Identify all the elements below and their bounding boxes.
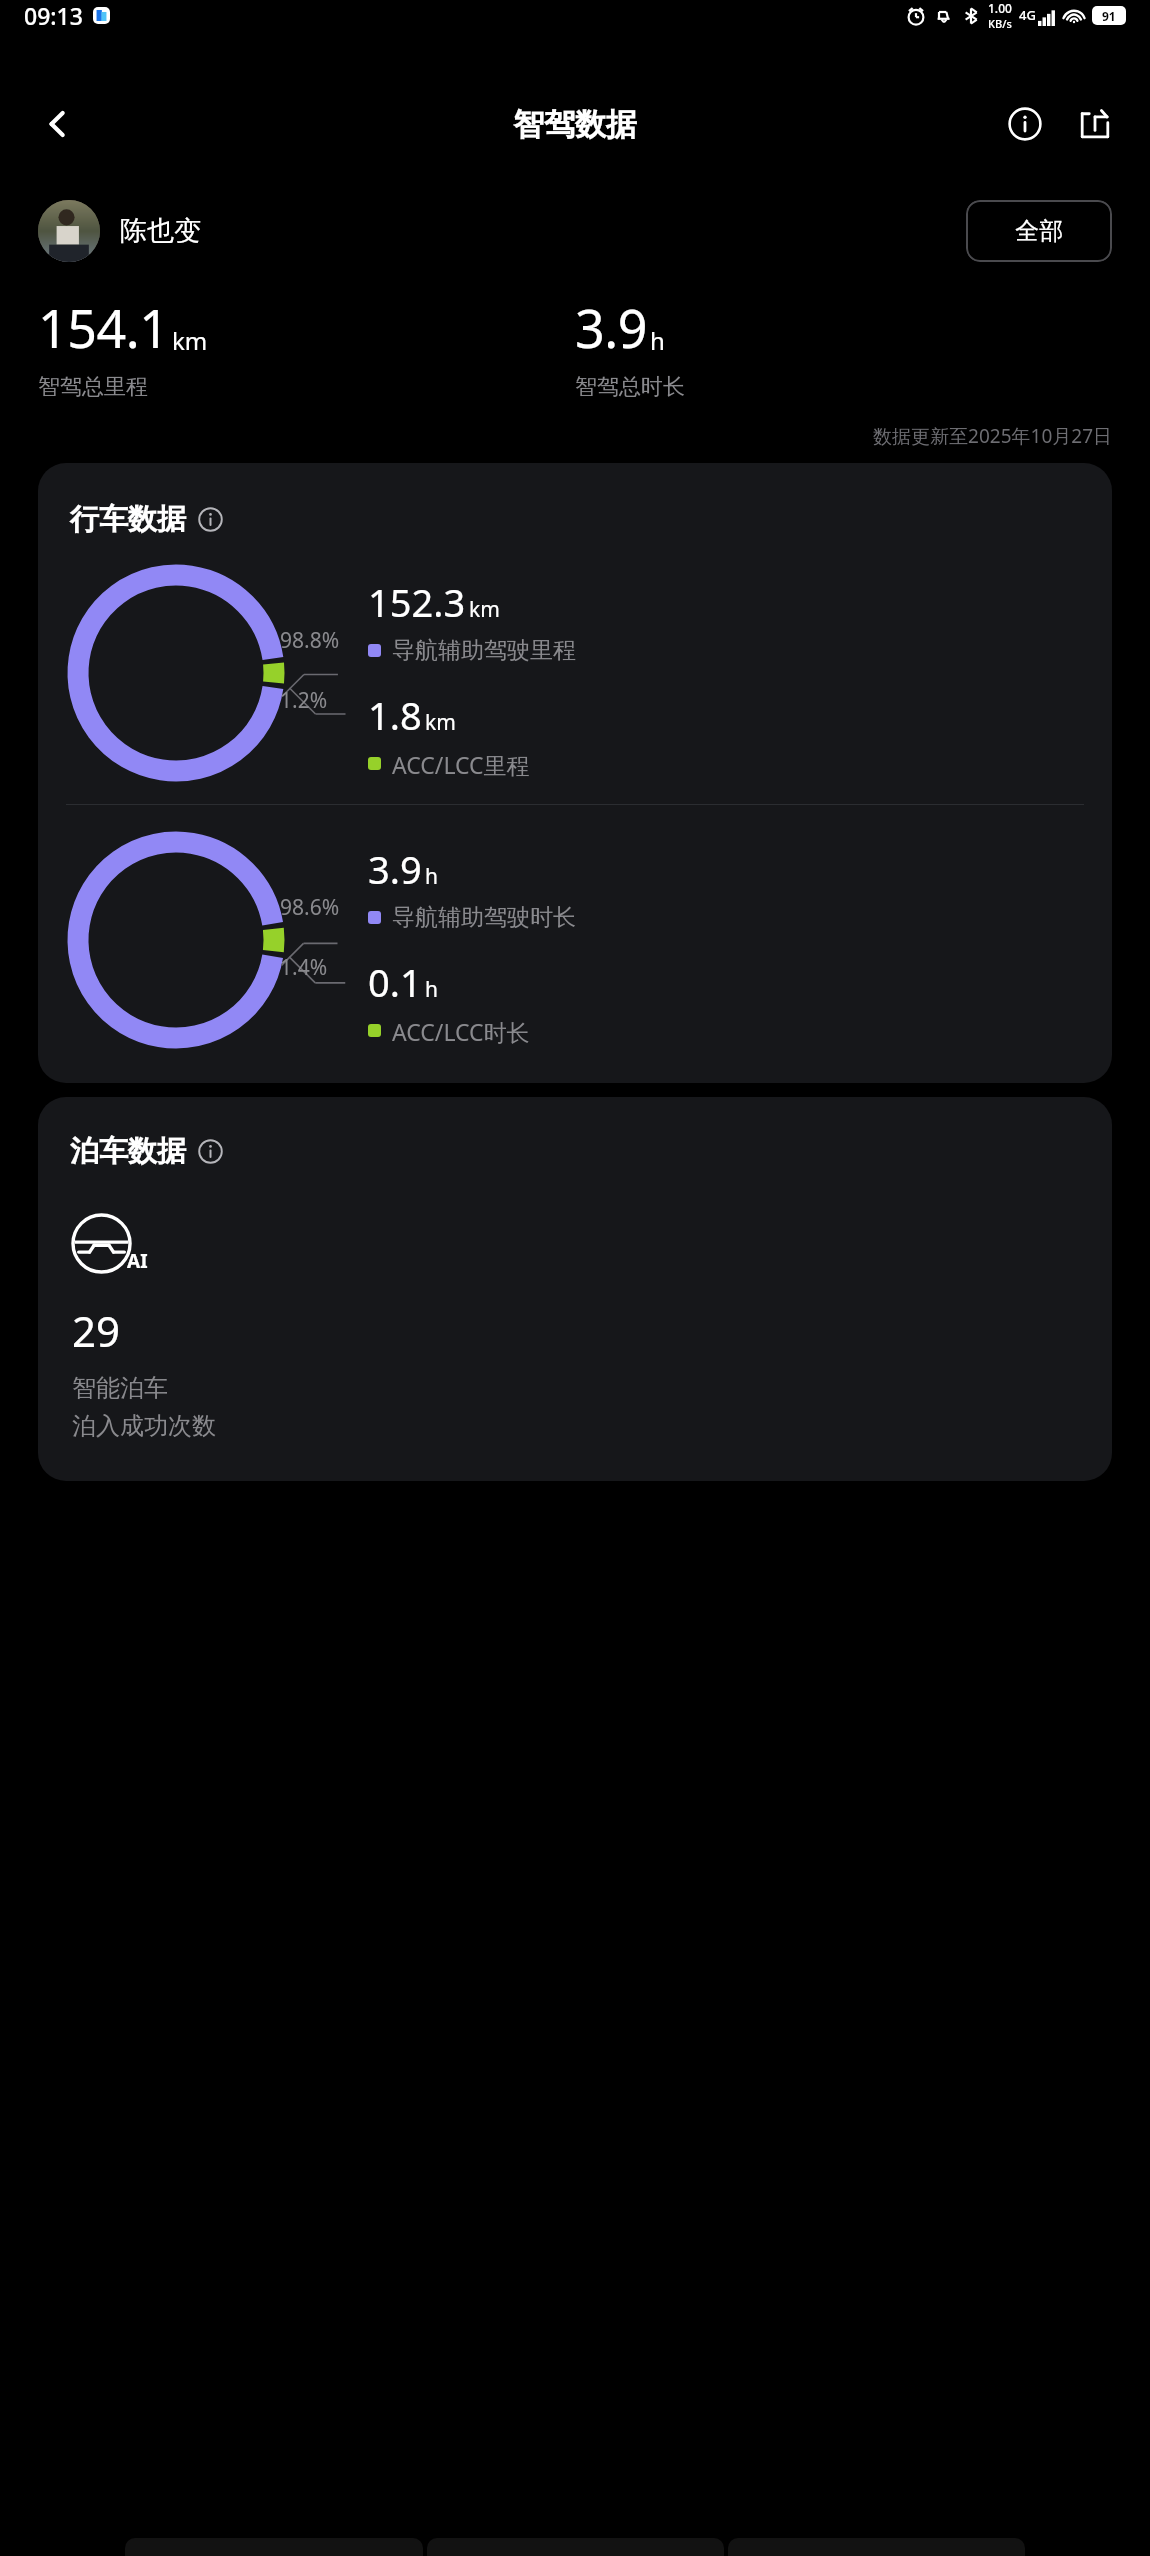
- button[interactable]: 行车数据: [70, 501, 223, 538]
- staticText: 4G: [1019, 6, 1036, 24]
- staticText: 98.8%: [280, 626, 340, 655]
- staticText: 1.00: [988, 0, 1012, 16]
- staticText: 09:13: [24, 0, 83, 31]
- button[interactable]: 行车数据: [38, 463, 1112, 1083]
- staticText: 导航辅助驾驶里程: [392, 636, 576, 665]
- button[interactable]: 泊车数据: [70, 1133, 223, 1170]
- staticText: 29: [72, 1302, 121, 1359]
- other: Info: [198, 507, 223, 532]
- staticText: 数据更新至2025年10月27日: [873, 423, 1112, 449]
- staticText: 智驾总时长: [575, 373, 685, 401]
- button[interactable]: Profile photo: [38, 200, 100, 262]
- staticText: 智能泊车: [72, 1373, 168, 1403]
- button[interactable]: Info: [996, 95, 1054, 153]
- staticText: 154.1: [38, 292, 169, 363]
- staticText: 泊入成功次数: [72, 1411, 216, 1441]
- button[interactable]: 泊车数据: [38, 1097, 1112, 1481]
- staticText: 3.9: [368, 843, 422, 895]
- staticText: h: [650, 324, 665, 357]
- button[interactable]: Share: [1066, 95, 1124, 153]
- staticText: 3.9: [575, 292, 647, 363]
- other: Info: [198, 1139, 223, 1164]
- staticText: h: [425, 862, 438, 891]
- staticText: h: [425, 975, 438, 1004]
- staticText: 陈也变: [120, 214, 201, 248]
- staticText: 91: [1102, 8, 1116, 24]
- staticText: AI: [127, 1248, 148, 1274]
- staticText: 1.4%: [280, 953, 328, 982]
- staticText: km: [425, 708, 456, 737]
- staticText: 泊车数据: [70, 1133, 186, 1170]
- staticText: 152.3: [368, 576, 466, 628]
- button[interactable]: Back: [28, 94, 88, 154]
- staticText: 导航辅助驾驶时长: [392, 903, 576, 932]
- staticText: 全部: [1015, 216, 1063, 246]
- button[interactable]: 全部: [966, 200, 1112, 262]
- staticText: km: [469, 595, 500, 624]
- staticText: 行车数据: [70, 501, 186, 538]
- staticText: 98.6%: [280, 893, 340, 922]
- staticText: ACC/LCC时长: [392, 1016, 530, 1045]
- staticText: km: [172, 324, 208, 357]
- staticText: 1.8: [368, 689, 422, 741]
- staticText: 智驾数据: [513, 105, 637, 144]
- staticText: ACC/LCC里程: [392, 749, 530, 778]
- staticText: KB/s: [988, 16, 1012, 31]
- staticText: 1.2%: [280, 686, 328, 715]
- staticText: 智驾总里程: [38, 373, 148, 401]
- staticText: 0.1: [368, 956, 422, 1008]
